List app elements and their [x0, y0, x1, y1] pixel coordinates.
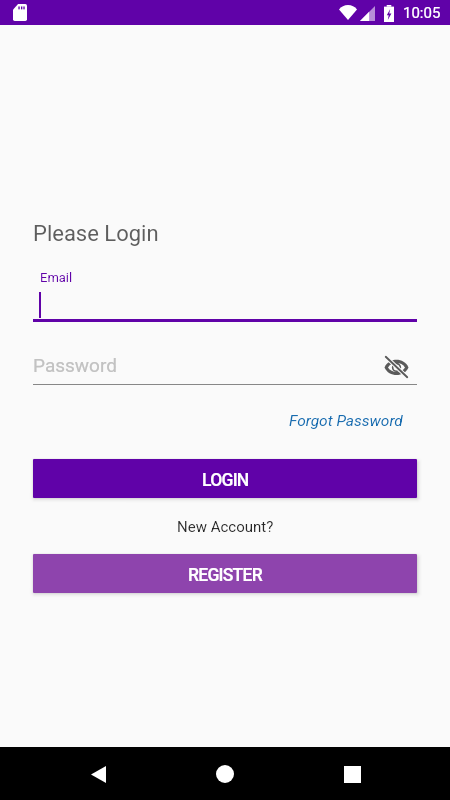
button[interactable]: LOGIN — [33, 459, 417, 498]
button[interactable]: Home — [205, 754, 245, 794]
staticText: Email — [40, 270, 73, 285]
staticText: Password — [33, 354, 117, 376]
button[interactable]: REGISTER — [33, 554, 417, 593]
staticText: REGISTER — [188, 565, 262, 586]
button[interactable]: Show password — [378, 349, 414, 385]
button[interactable]: Password — [33, 345, 417, 385]
staticText: Forgot Password — [289, 412, 403, 430]
staticText: Please Login — [33, 221, 159, 247]
button[interactable]: Recents — [332, 754, 372, 794]
staticText: New Account? — [177, 518, 274, 536]
button[interactable]: Email — [33, 265, 417, 322]
button[interactable]: Back — [78, 754, 118, 794]
staticText: LOGIN — [202, 470, 249, 491]
button[interactable]: Forgot Password — [289, 412, 403, 430]
staticText: 10:05 — [403, 4, 441, 22]
